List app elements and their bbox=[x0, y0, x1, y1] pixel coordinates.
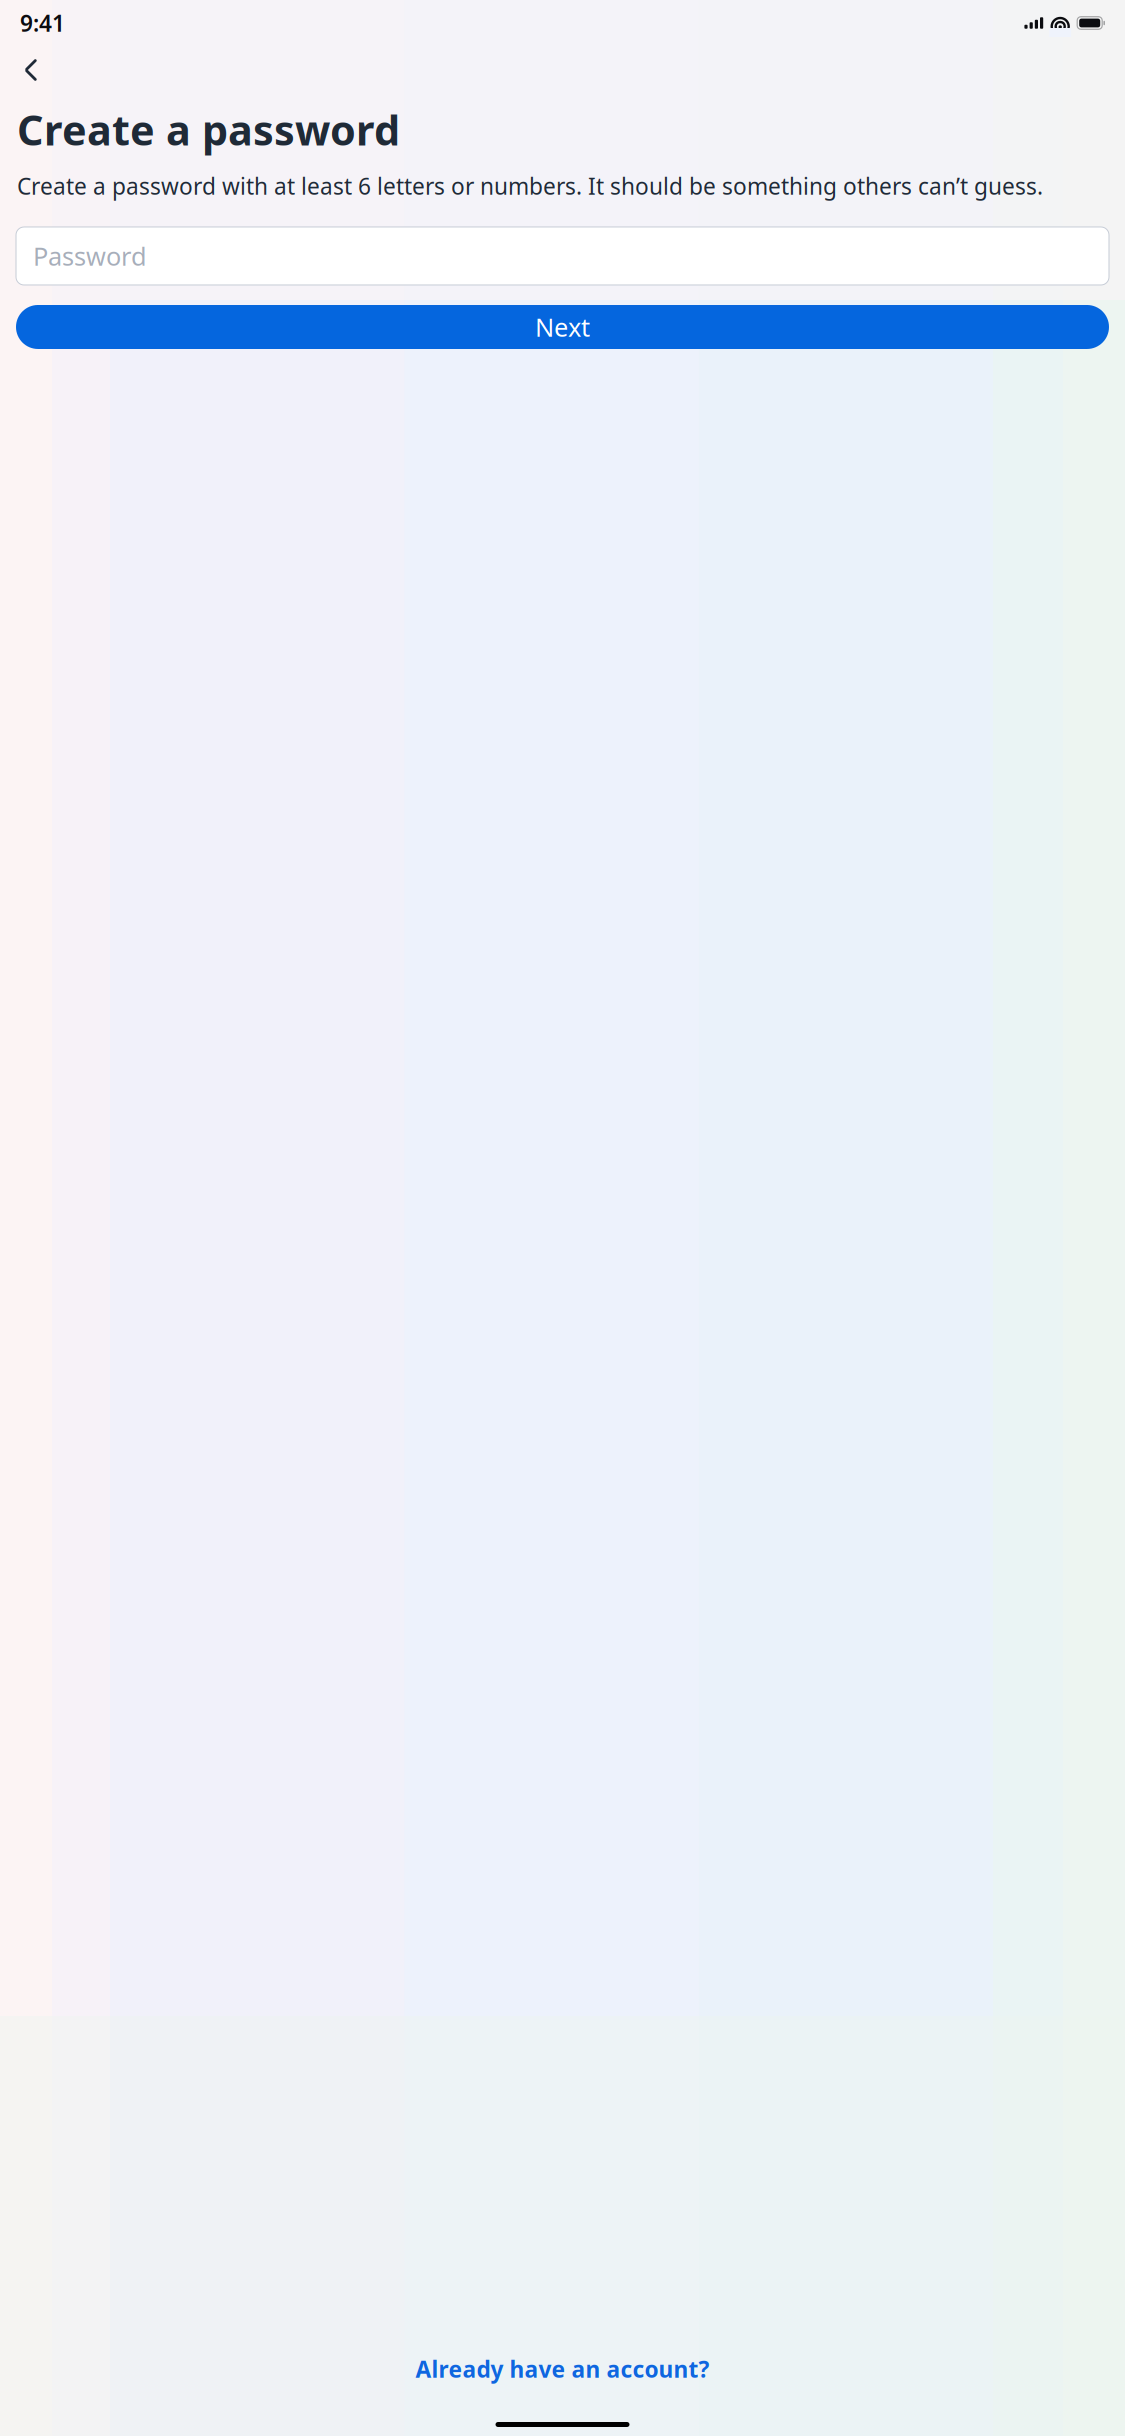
staticText: Already have an account? bbox=[415, 2354, 709, 2384]
button[interactable]: Back bbox=[9, 48, 53, 92]
button[interactable]: Already have an account? bbox=[399, 2344, 725, 2394]
button[interactable]: Password bbox=[16, 227, 1109, 285]
staticText: Next bbox=[535, 310, 590, 344]
staticText: Password bbox=[33, 239, 147, 273]
staticText: Create a password with at least 6 letter… bbox=[17, 171, 1043, 201]
staticText: 9:41 bbox=[20, 8, 65, 38]
staticText: Create a password bbox=[17, 102, 400, 157]
button[interactable]: Next bbox=[16, 305, 1109, 349]
